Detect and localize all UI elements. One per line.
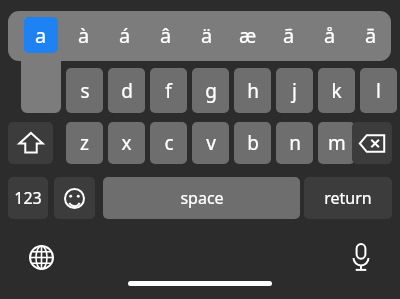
button[interactable]: Emoji [54, 177, 95, 219]
button[interactable]: a [24, 17, 58, 53]
staticText: x [121, 130, 132, 156]
staticText: ā [365, 22, 377, 49]
button[interactable]: f [150, 68, 187, 113]
staticText: ã [283, 22, 295, 49]
button[interactable]: ä [189, 17, 225, 53]
button[interactable]: Shift [8, 122, 53, 164]
staticText: s [80, 78, 90, 104]
staticText: m [328, 130, 346, 156]
staticText: g [205, 78, 217, 104]
button[interactable]: m [318, 122, 355, 164]
button[interactable]: x [108, 122, 145, 164]
button[interactable]: â [148, 17, 184, 53]
button[interactable]: n [276, 122, 313, 164]
button[interactable]: à [66, 17, 102, 53]
button[interactable]: return [304, 177, 392, 219]
staticText: 123 [14, 187, 42, 209]
staticText: à [78, 22, 90, 49]
button[interactable]: space [103, 177, 300, 219]
staticText: h [247, 78, 259, 104]
staticText: á [119, 22, 131, 49]
button[interactable]: z [66, 122, 103, 164]
button[interactable]: 123 [8, 177, 48, 219]
staticText: l [376, 78, 381, 104]
staticText: f [165, 78, 172, 104]
button[interactable]: h [234, 68, 271, 113]
staticText: z [80, 130, 89, 156]
button[interactable]: s [66, 68, 103, 113]
button[interactable]: b [234, 122, 271, 164]
button[interactable]: d [108, 68, 145, 113]
button[interactable]: Dictation [342, 238, 380, 276]
button[interactable]: g [192, 68, 229, 113]
button[interactable]: c [150, 122, 187, 164]
staticText: b [247, 130, 259, 156]
staticText: å [324, 22, 336, 49]
staticText: â [160, 22, 172, 49]
staticText: return [324, 187, 372, 209]
button[interactable]: Backspace [352, 122, 392, 164]
button[interactable]: å [312, 17, 348, 53]
staticText: c [164, 130, 174, 156]
staticText: space [180, 187, 224, 209]
button[interactable]: á [107, 17, 143, 53]
staticText: n [289, 130, 301, 156]
button[interactable]: ā [353, 17, 389, 53]
button[interactable]: ã [271, 17, 307, 53]
button[interactable]: Switch keyboard [22, 238, 60, 276]
button[interactable]: l [360, 68, 397, 113]
button[interactable]: j [276, 68, 313, 113]
button[interactable]: æ [230, 17, 266, 53]
button[interactable]: v [192, 122, 229, 164]
staticText: j [292, 78, 297, 104]
staticText: ä [201, 22, 213, 49]
staticText: d [121, 78, 133, 104]
staticText: æ [239, 22, 257, 49]
staticText: k [331, 78, 342, 104]
button[interactable]: k [318, 68, 355, 113]
staticText: a [35, 22, 47, 49]
staticText: v [206, 130, 216, 156]
